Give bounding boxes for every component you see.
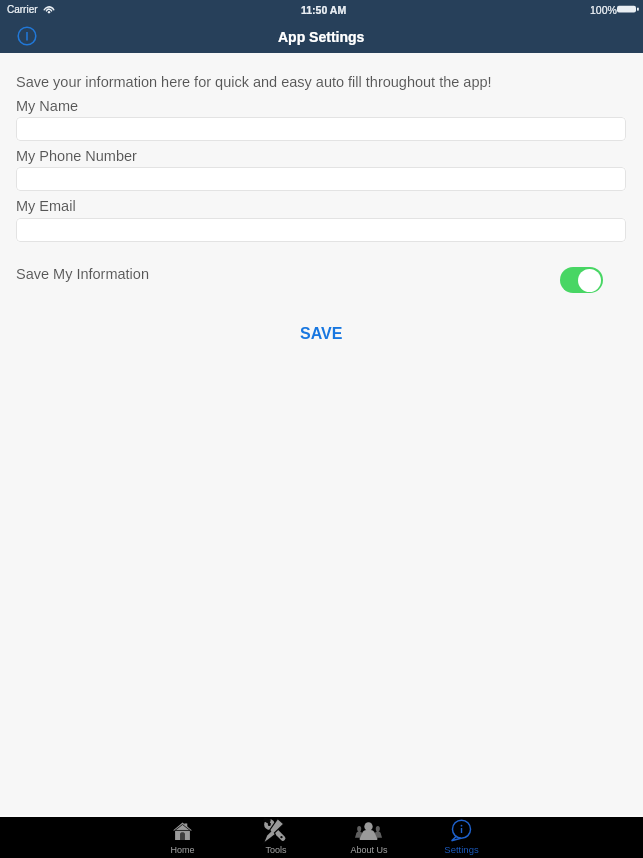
staticText: Tools <box>265 845 287 855</box>
button[interactable]: Home <box>136 815 229 858</box>
staticText: Carrier <box>7 4 38 15</box>
staticText: Save your information here for quick and… <box>16 74 492 90</box>
staticText: My Email <box>16 198 76 214</box>
staticText: Home <box>170 845 195 855</box>
button[interactable]: SAVE <box>280 319 363 349</box>
button[interactable]: About Us <box>322 815 415 858</box>
button[interactable]: My Phone Number <box>16 167 626 191</box>
button[interactable]: Info <box>11 20 43 52</box>
button[interactable]: Save My Information toggle <box>560 267 603 293</box>
staticText: About Us <box>350 845 388 855</box>
button[interactable]: Tools <box>229 815 322 858</box>
button[interactable]: My Email <box>16 218 626 242</box>
staticText: My Phone Number <box>16 148 137 164</box>
staticText: App Settings <box>278 29 365 45</box>
staticText: Settings <box>444 844 479 855</box>
staticText: 100% <box>590 4 617 16</box>
staticText: SAVE <box>300 325 343 343</box>
button[interactable]: My Name <box>16 117 626 141</box>
staticText: My Name <box>16 98 79 114</box>
staticText: Save My Information <box>16 266 149 282</box>
button[interactable]: Settings <box>415 815 508 858</box>
staticText: 11:50 AM <box>301 4 347 16</box>
